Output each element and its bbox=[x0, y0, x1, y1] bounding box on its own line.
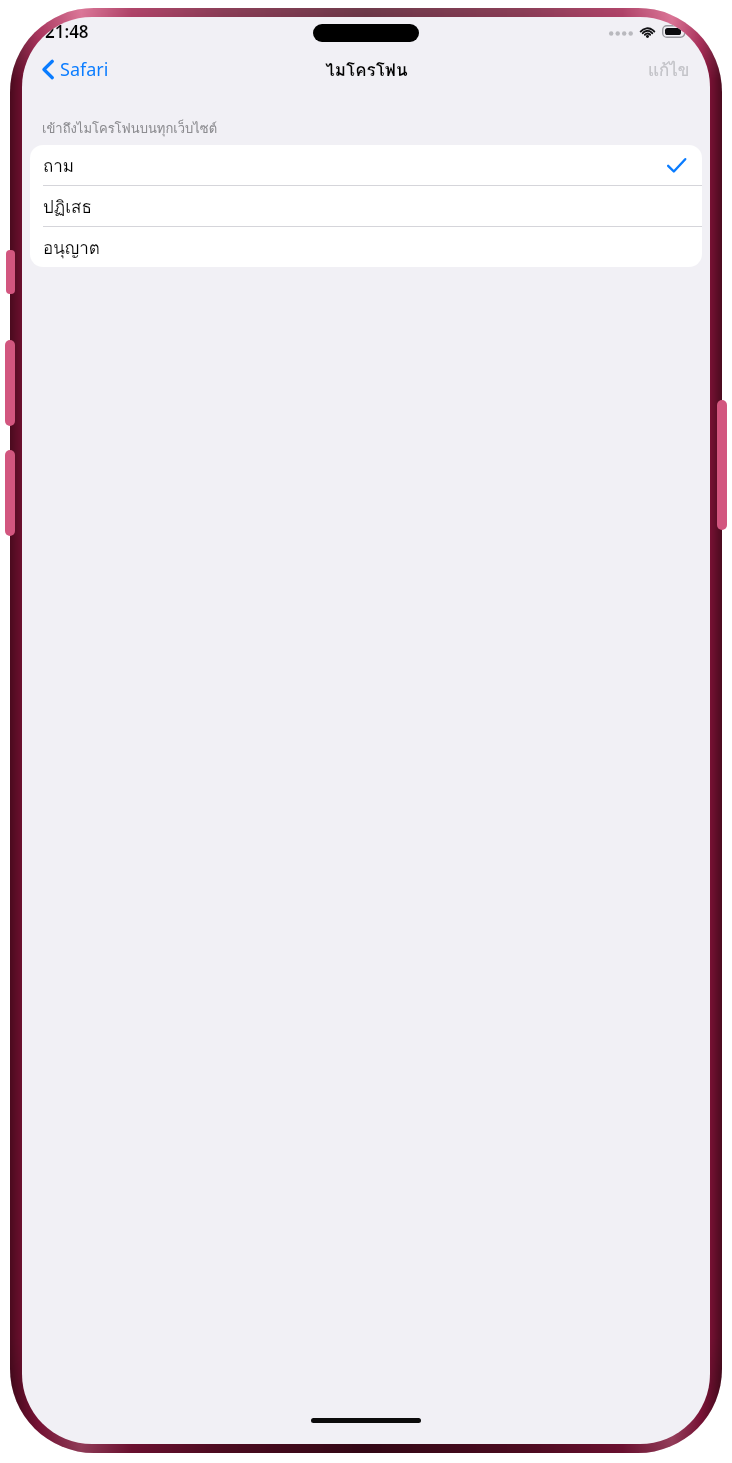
staticText: Safari bbox=[60, 57, 109, 82]
staticText: เข้าถึงไมโครโฟนบนทุกเว็บไซต์ bbox=[42, 118, 218, 139]
button[interactable]: ถาม bbox=[30, 145, 702, 185]
staticText: แก้ไข bbox=[648, 56, 690, 83]
staticText: ไมโครโฟน bbox=[325, 56, 408, 83]
button[interactable]: Safari bbox=[36, 53, 115, 86]
staticText: อนุญาต bbox=[43, 234, 100, 261]
other: Mute switch bbox=[6, 250, 15, 294]
staticText: 21:48 bbox=[45, 20, 89, 43]
button[interactable]: แก้ไข bbox=[642, 52, 696, 87]
button[interactable]: ปฏิเสธ bbox=[30, 186, 702, 226]
staticText: ปฏิเสธ bbox=[43, 193, 92, 220]
other: Volume down bbox=[5, 450, 15, 536]
other: Power bbox=[717, 400, 727, 530]
staticText: ถาม bbox=[43, 152, 75, 179]
other: Volume up bbox=[5, 340, 15, 426]
button[interactable]: อนุญาต bbox=[30, 227, 702, 267]
